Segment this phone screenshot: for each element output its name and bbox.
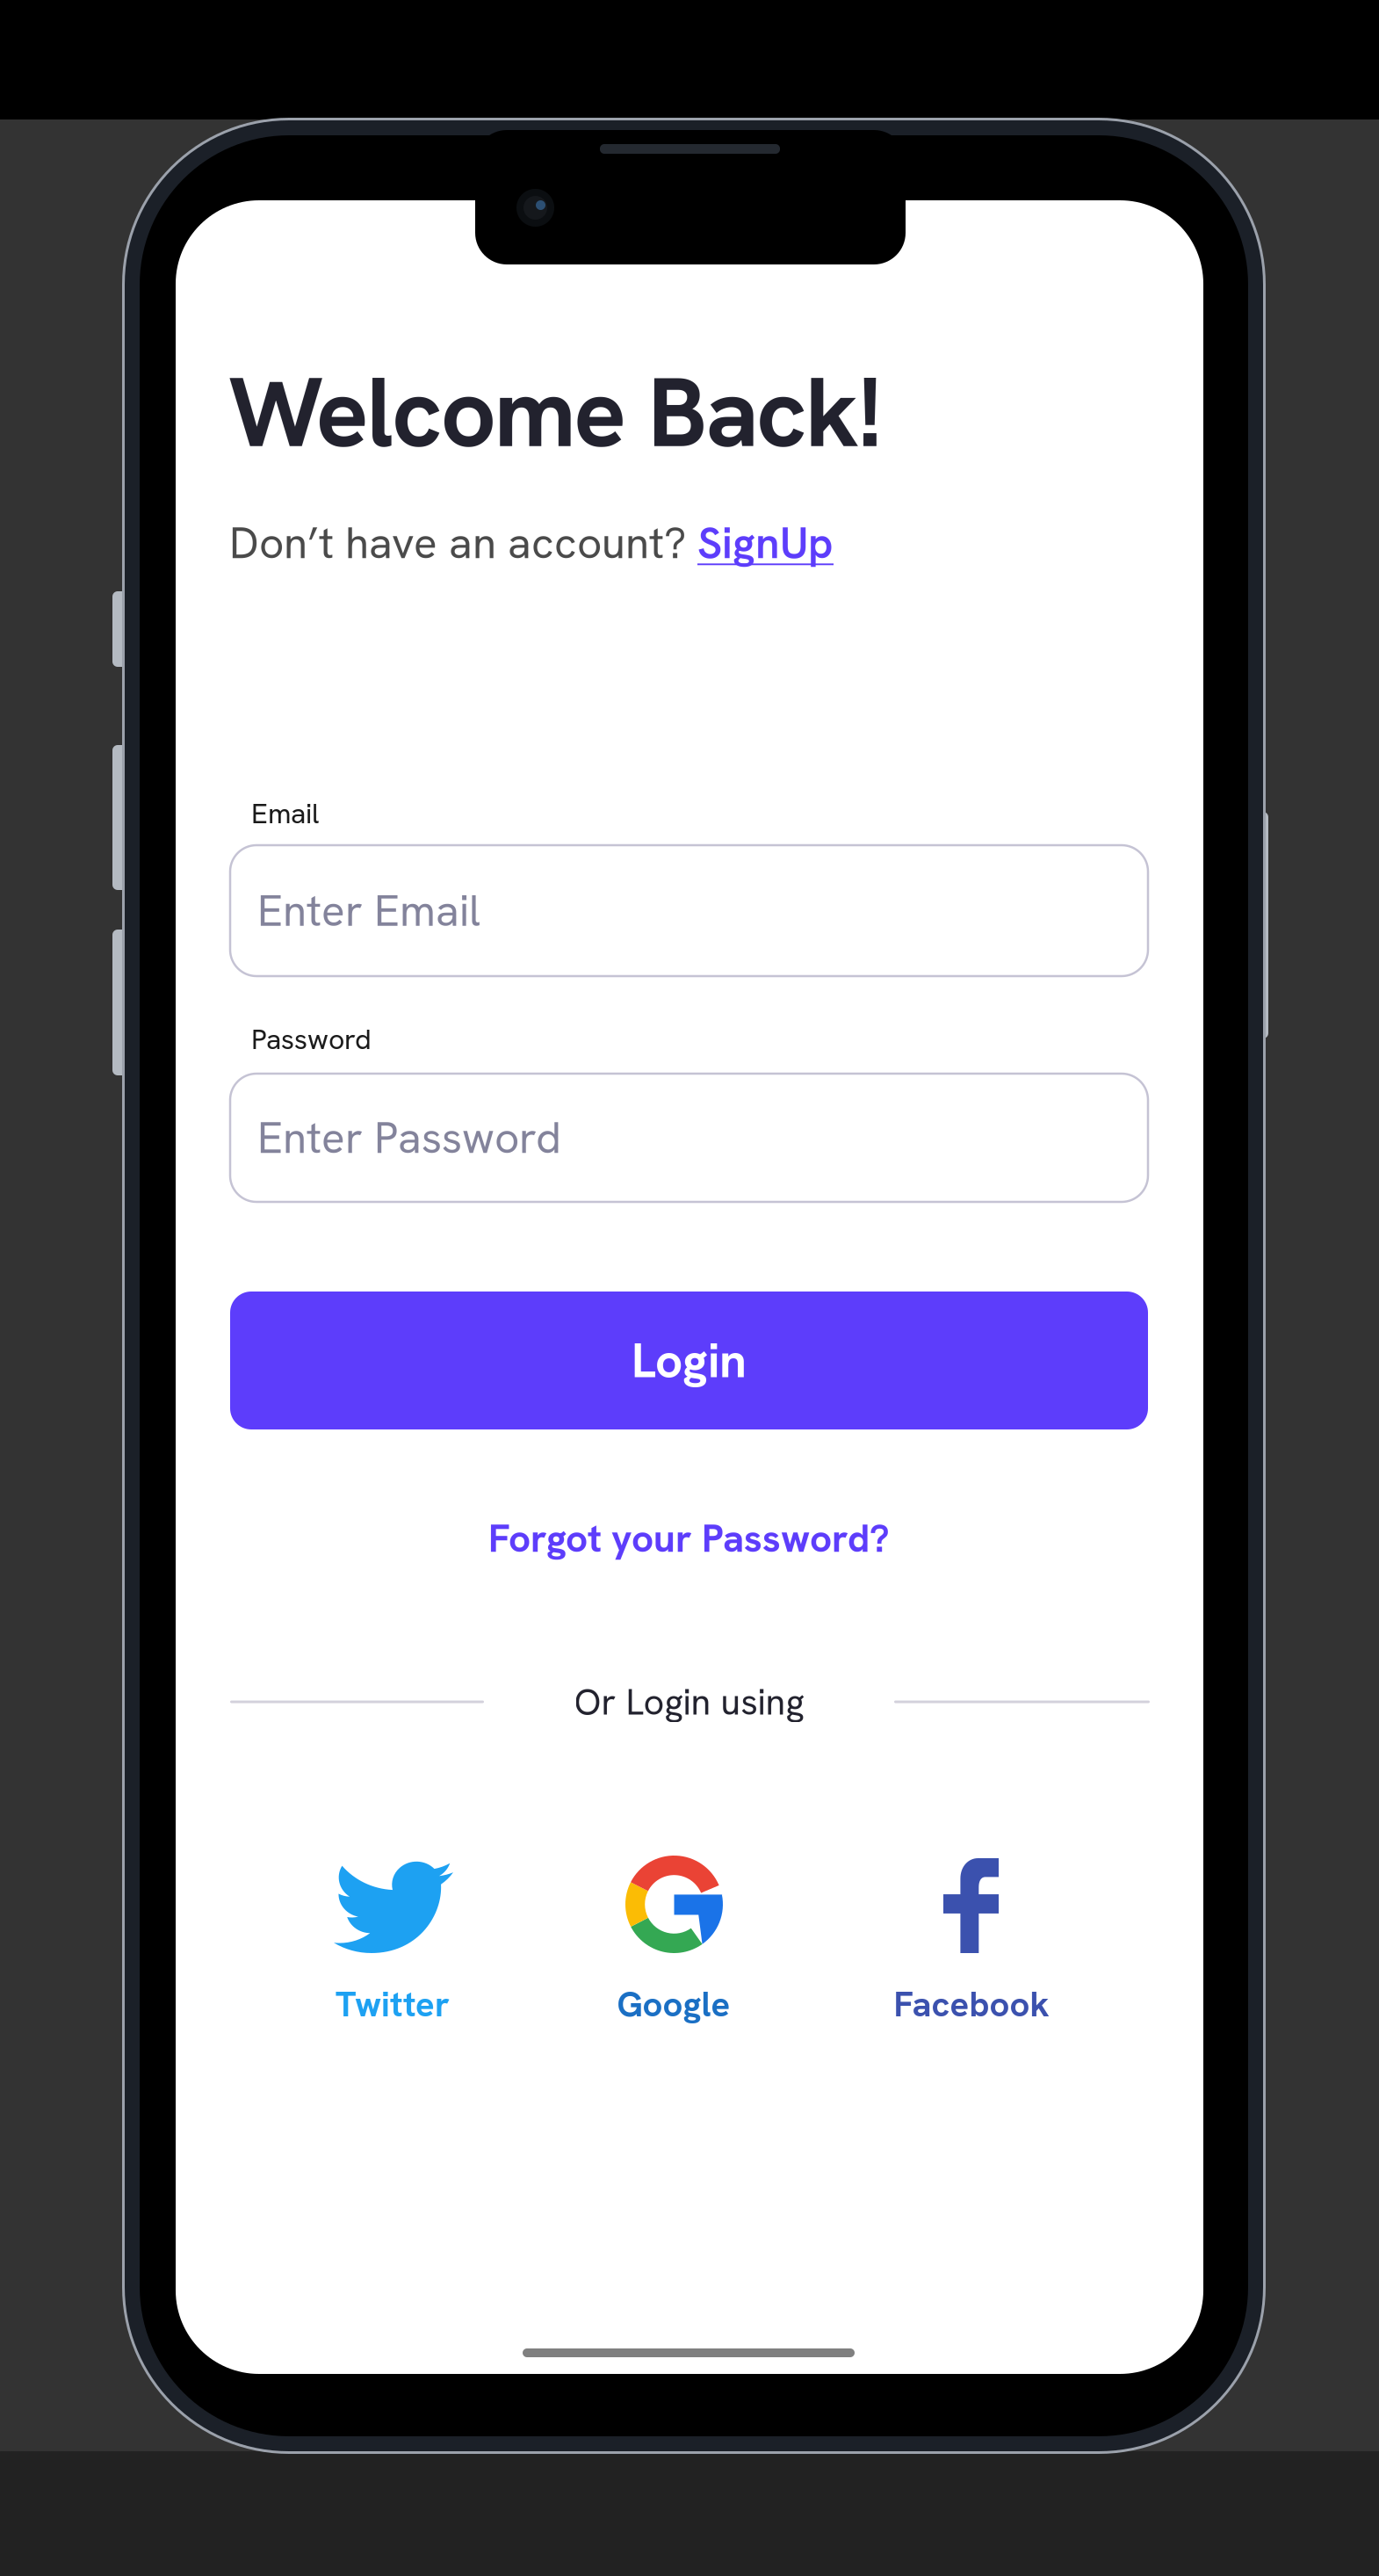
staticText: Login xyxy=(632,1329,747,1392)
staticText: Welcome Back! xyxy=(228,349,882,475)
staticText: SignUp xyxy=(697,515,834,571)
staticText: Or Login using xyxy=(574,1678,804,1726)
staticText: Twitter xyxy=(336,1981,450,2027)
staticText: Facebook xyxy=(894,1981,1049,2027)
button[interactable]: Forgot your Password? xyxy=(230,1512,1148,1565)
staticText: Forgot your Password? xyxy=(488,1513,890,1564)
button[interactable]: Login xyxy=(230,1292,1148,1429)
staticText: Email xyxy=(251,795,319,832)
button[interactable]: Google xyxy=(608,1855,740,2026)
staticText: Google xyxy=(617,1981,730,2027)
staticText: Enter Email xyxy=(257,882,480,939)
staticText: Don’t have an account? xyxy=(229,515,697,571)
button[interactable]: Twitter xyxy=(327,1855,458,2026)
button[interactable]: Facebook xyxy=(888,1855,1055,2026)
button[interactable]: SignUp xyxy=(697,515,834,571)
staticText: Password xyxy=(251,1021,372,1058)
staticText: Enter Password xyxy=(257,1110,561,1166)
